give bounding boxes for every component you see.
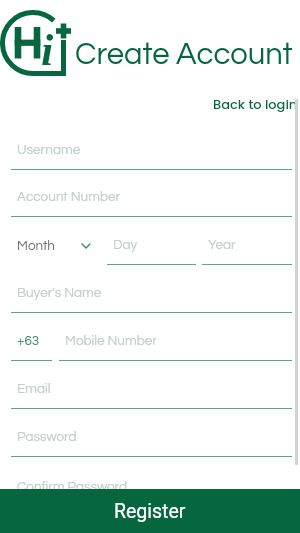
staticText: Year <box>208 238 236 252</box>
staticText: i <box>41 26 54 75</box>
staticText: Username <box>17 143 81 157</box>
button[interactable]: Username <box>11 137 292 171</box>
staticText: Month <box>17 239 56 253</box>
button[interactable]: Day <box>107 232 196 266</box>
button[interactable]: Back to login <box>196 91 298 117</box>
staticText: Email <box>17 382 51 396</box>
button[interactable]: Email <box>11 376 292 410</box>
button[interactable]: Mobile Number <box>59 328 292 362</box>
button[interactable]: +63 <box>11 328 52 362</box>
staticText: Account Number <box>17 190 121 204</box>
button[interactable]: Month <box>11 232 96 262</box>
staticText: Day <box>113 238 138 252</box>
button[interactable]: Confirm Password <box>11 474 292 508</box>
button[interactable]: Buyer's Name <box>11 280 292 314</box>
button[interactable]: Account Number <box>11 184 292 218</box>
staticText: +63 <box>17 334 40 348</box>
button[interactable]: Register <box>0 489 300 533</box>
staticText: Password <box>17 430 77 444</box>
staticText: Mobile Number <box>65 334 157 348</box>
staticText: Buyer's Name <box>17 286 102 300</box>
staticText: Register <box>114 500 186 523</box>
button[interactable]: Password <box>11 424 292 458</box>
button[interactable]: Year <box>202 232 292 266</box>
staticText: Confirm Password <box>17 480 128 494</box>
staticText: Back to login <box>213 95 298 113</box>
staticText: Create Account <box>75 39 293 71</box>
